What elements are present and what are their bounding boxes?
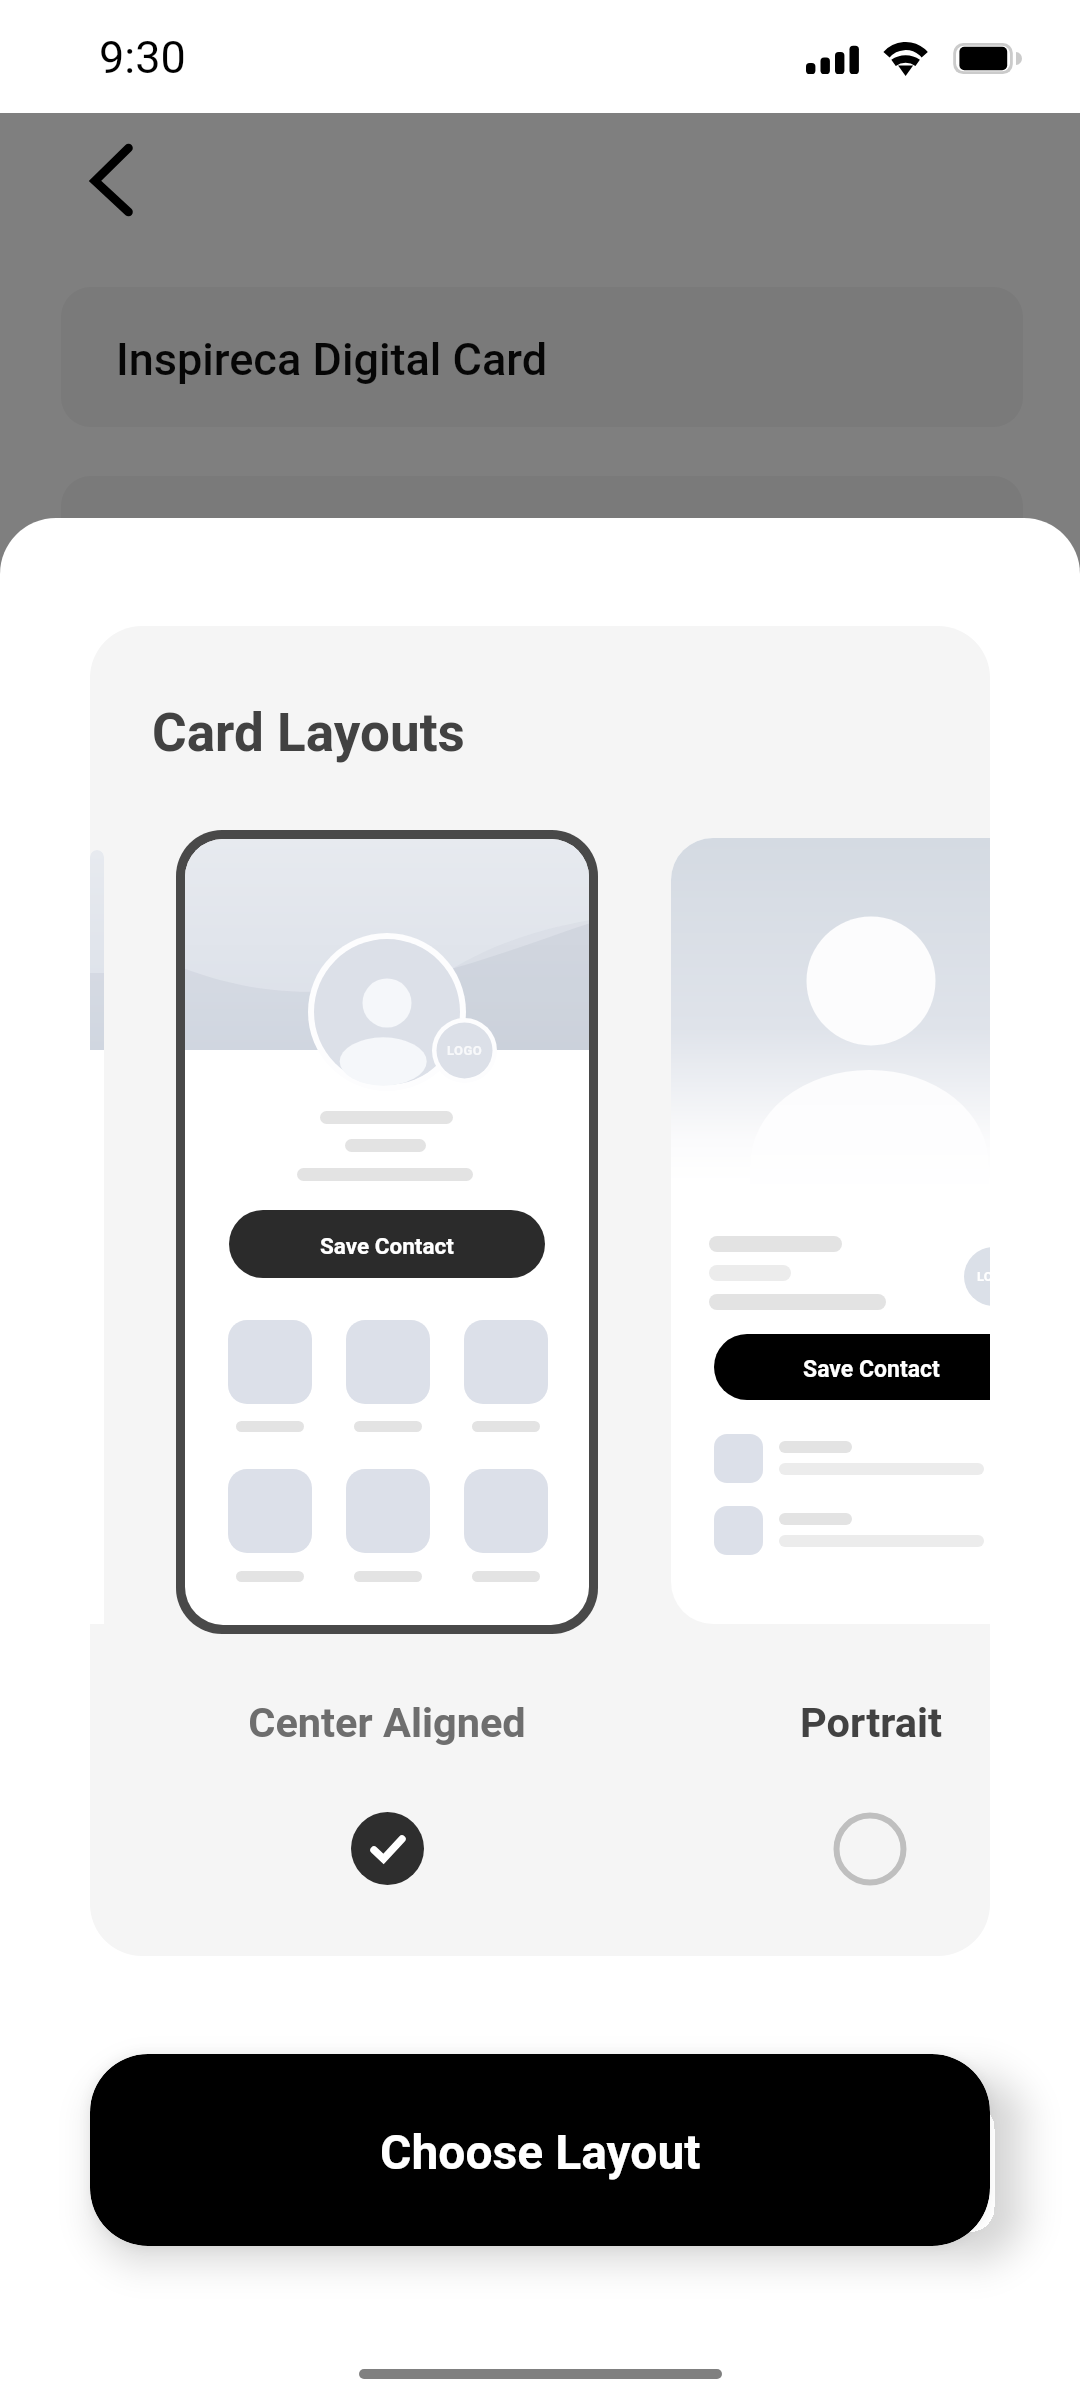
button[interactable]: Save Contact xyxy=(229,1210,545,1278)
staticText: LOGO xyxy=(447,1043,483,1058)
staticText: 9:30 xyxy=(99,31,186,84)
button[interactable]: LOGO xyxy=(671,838,990,1624)
staticText: Save Contact xyxy=(320,1233,454,1259)
staticText: Choose Layout xyxy=(380,2124,701,2180)
staticText: Center Aligned xyxy=(187,1698,587,1747)
staticText: Card Layouts xyxy=(152,702,465,764)
staticText: Save Contact xyxy=(803,1356,940,1383)
button[interactable]: Portrait, not selected xyxy=(833,1812,907,1886)
button[interactable]: Inspireca Digital Card xyxy=(61,287,1023,427)
staticText: LOGO xyxy=(977,1269,990,1284)
button[interactable]: Save Contact xyxy=(714,1334,990,1400)
button[interactable]: Back xyxy=(58,133,173,248)
button[interactable]: Choose Layout xyxy=(90,2054,990,2246)
staticText: Inspireca Digital Card xyxy=(116,333,548,386)
button[interactable]: Center Aligned, selected xyxy=(351,1812,424,1885)
staticText: Portrait xyxy=(671,1698,990,1747)
button[interactable]: LOGO xyxy=(185,839,589,1625)
